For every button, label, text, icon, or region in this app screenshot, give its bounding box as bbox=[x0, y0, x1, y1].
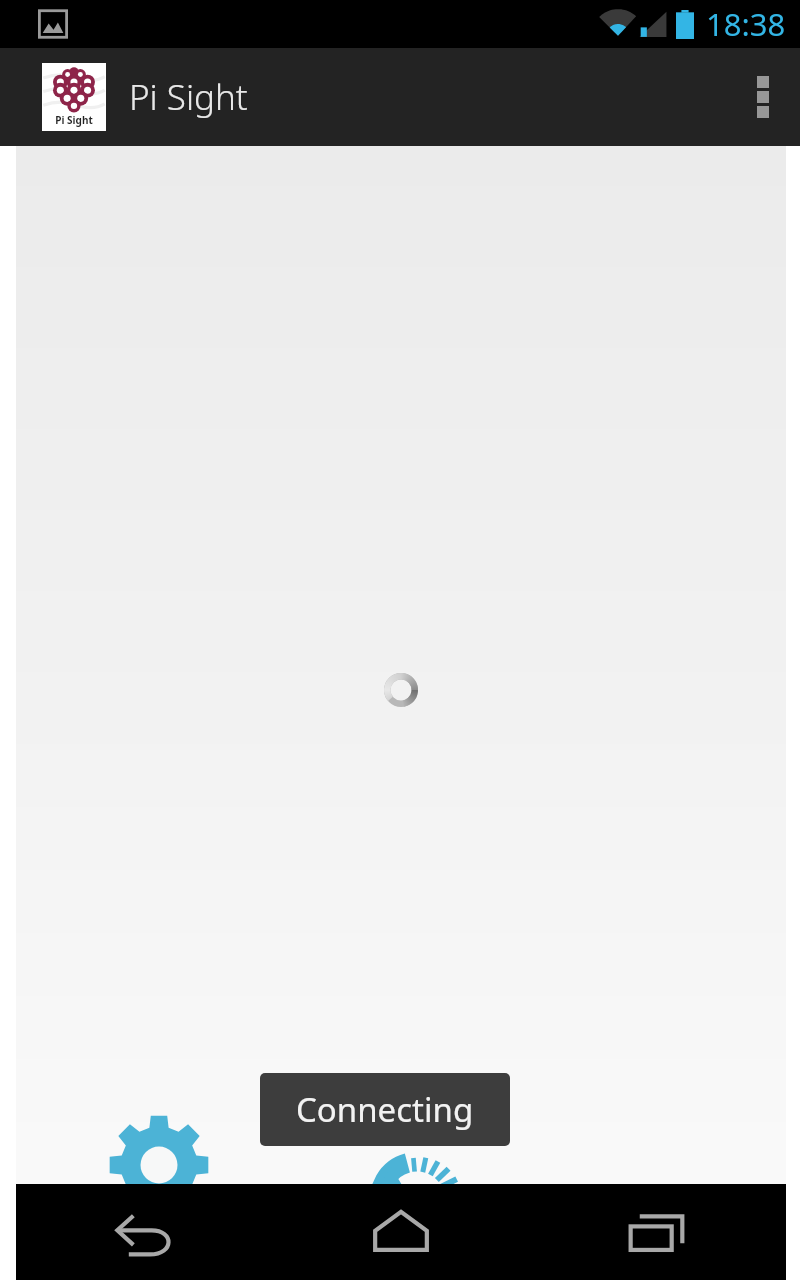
button[interactable]: Home bbox=[272, 1184, 529, 1280]
button[interactable]: Settings bbox=[108, 1114, 210, 1216]
button[interactable]: More options bbox=[726, 48, 800, 146]
button[interactable]: Reconnect bbox=[364, 1146, 470, 1252]
button[interactable]: Back bbox=[16, 1184, 272, 1280]
staticText: Connecting bbox=[296, 1087, 474, 1132]
staticText: 18:38 bbox=[706, 3, 786, 45]
staticText: Pi Sight bbox=[129, 73, 248, 121]
staticText: Pi Sight bbox=[55, 113, 93, 127]
button[interactable]: Recent apps bbox=[529, 1184, 786, 1280]
